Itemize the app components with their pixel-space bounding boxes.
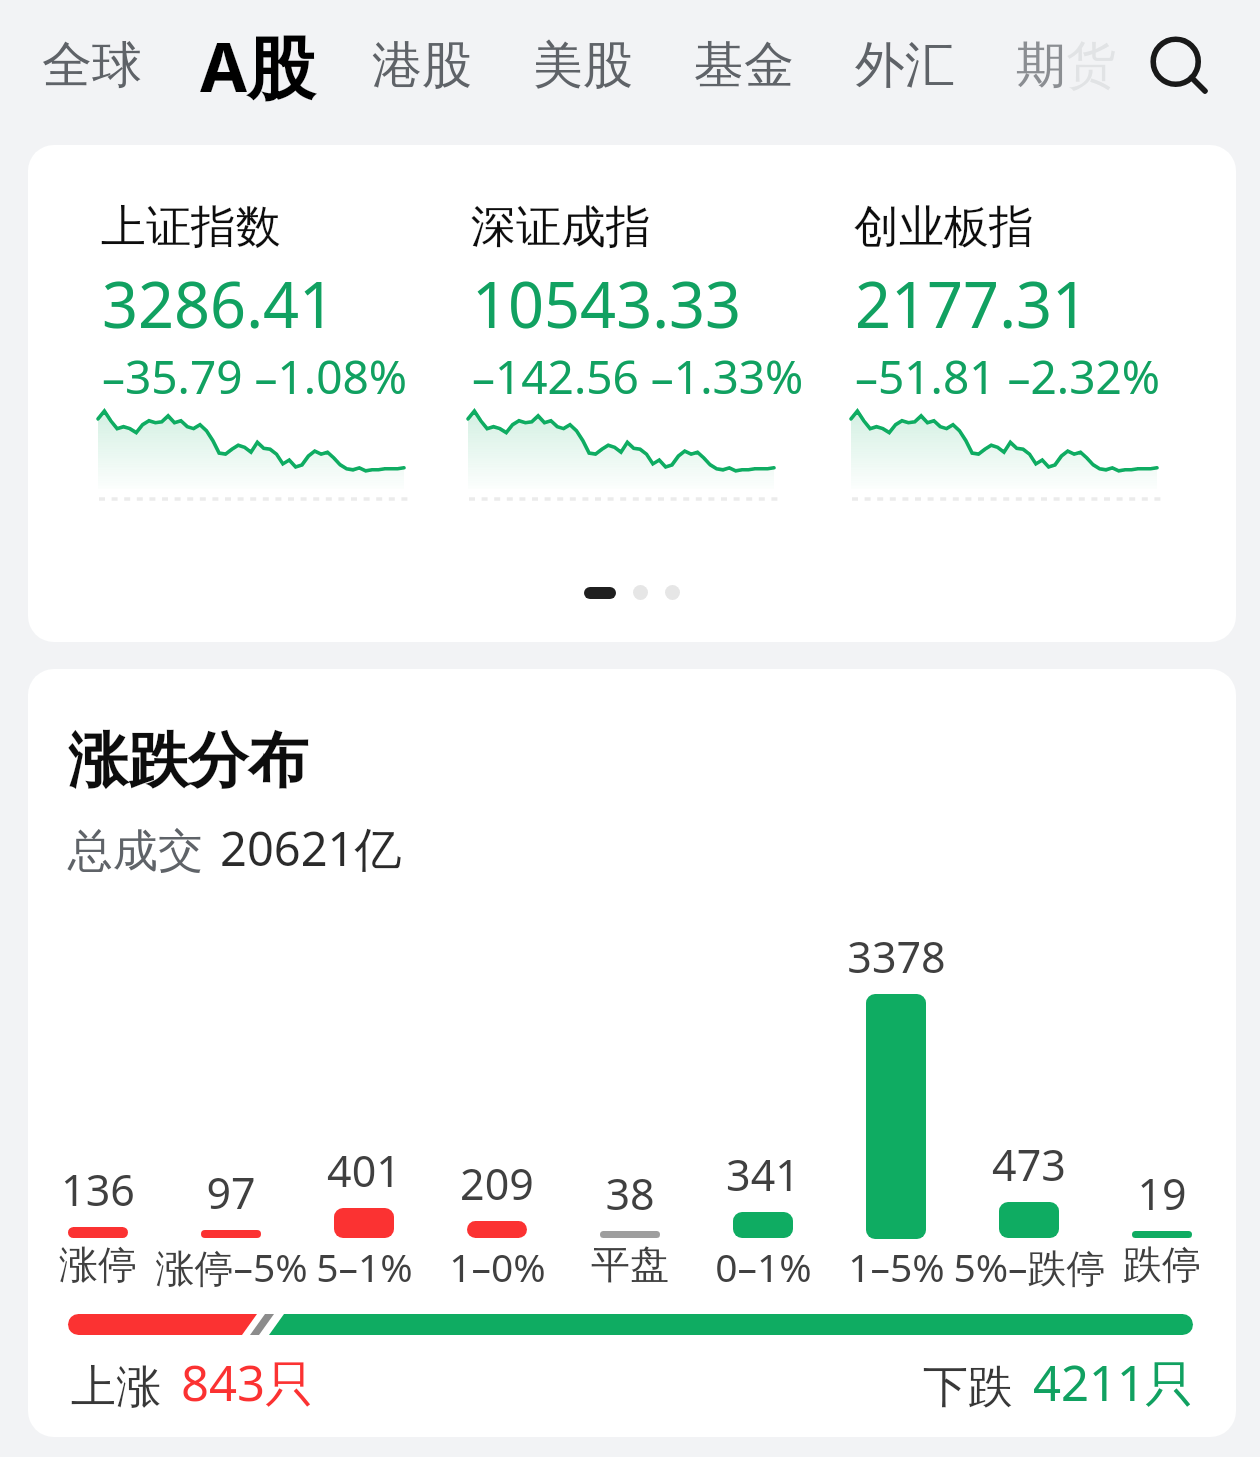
staticText: 136 — [61, 1160, 135, 1219]
staticText: 跌停 — [1123, 1240, 1201, 1289]
staticText: 4211只 — [1033, 1349, 1195, 1416]
staticText: 外汇 — [855, 34, 955, 97]
button[interactable]: 5–1% — [298, 885, 430, 1285]
staticText: 19 — [1137, 1164, 1187, 1223]
button[interactable]: 0–1% — [697, 885, 829, 1285]
staticText: –35.79 –1.08% — [102, 345, 408, 408]
button[interactable]: 1–5% — [830, 885, 962, 1285]
staticText: 473 — [992, 1135, 1066, 1194]
staticText: 上证指数 — [101, 199, 281, 256]
staticText: A股 — [200, 19, 316, 112]
button[interactable]: 基金 — [694, 34, 794, 97]
staticText: 5–1% — [316, 1240, 413, 1293]
button[interactable]: 涨停 — [32, 885, 164, 1285]
staticText: 港股 — [372, 34, 472, 97]
staticText: 97 — [206, 1163, 256, 1222]
staticText: 1–0% — [449, 1240, 546, 1293]
button[interactable]: 跌停 — [1096, 885, 1228, 1285]
button[interactable]: 创业板指 — [848, 189, 1218, 519]
button[interactable]: 期 — [1016, 34, 1116, 97]
staticText: 下跌 — [923, 1359, 1013, 1416]
staticText: 3286.41 — [102, 261, 336, 347]
staticText: 1–5% — [848, 1240, 945, 1293]
staticText: 209 — [460, 1154, 534, 1213]
staticText: 全球 — [42, 34, 142, 97]
staticText: 38 — [605, 1164, 655, 1223]
button[interactable]: 5%–跌停 — [963, 885, 1095, 1285]
button[interactable]: 外汇 — [855, 34, 955, 97]
staticText: 843只 — [181, 1349, 315, 1416]
button[interactable]: 上证指数 — [95, 189, 465, 519]
staticText: 平盘 — [591, 1240, 669, 1289]
staticText: 20621亿 — [220, 816, 402, 880]
staticText: –51.81 –2.32% — [855, 345, 1161, 408]
staticText: –142.56 –1.33% — [472, 345, 804, 408]
button[interactable]: 涨停–5% — [165, 885, 297, 1285]
button[interactable]: 平盘 — [564, 885, 696, 1285]
staticText: 5%–跌停 — [953, 1240, 1106, 1293]
staticText: 2177.31 — [855, 261, 1089, 347]
staticText: 341 — [726, 1145, 800, 1204]
staticText: 涨停–5% — [155, 1240, 308, 1293]
button[interactable]: 1–0% — [431, 885, 563, 1285]
staticText: 货 — [1066, 34, 1116, 97]
button[interactable]: 深证成指 — [465, 189, 835, 519]
staticText: 创业板指 — [854, 199, 1034, 256]
staticText: 0–1% — [715, 1240, 812, 1293]
staticText: 10543.33 — [472, 261, 742, 347]
button[interactable]: Search — [1136, 22, 1220, 106]
staticText: 3378 — [847, 927, 946, 986]
staticText: 美股 — [533, 34, 633, 97]
staticText: 基金 — [694, 34, 794, 97]
button[interactable]: A股 — [200, 19, 316, 112]
staticText: 上涨 — [71, 1359, 161, 1416]
staticText: 涨停 — [59, 1240, 137, 1289]
staticText: 401 — [327, 1141, 401, 1200]
staticText: 总成交 — [68, 823, 203, 880]
button[interactable]: 上证指数 — [28, 145, 1236, 642]
button[interactable]: 美股 — [533, 34, 633, 97]
staticText: 期 — [1016, 34, 1066, 97]
staticText: 涨跌分布 — [68, 723, 308, 799]
button[interactable]: 全球 — [42, 34, 142, 97]
staticText: 深证成指 — [471, 199, 651, 256]
button[interactable]: 港股 — [372, 34, 472, 97]
